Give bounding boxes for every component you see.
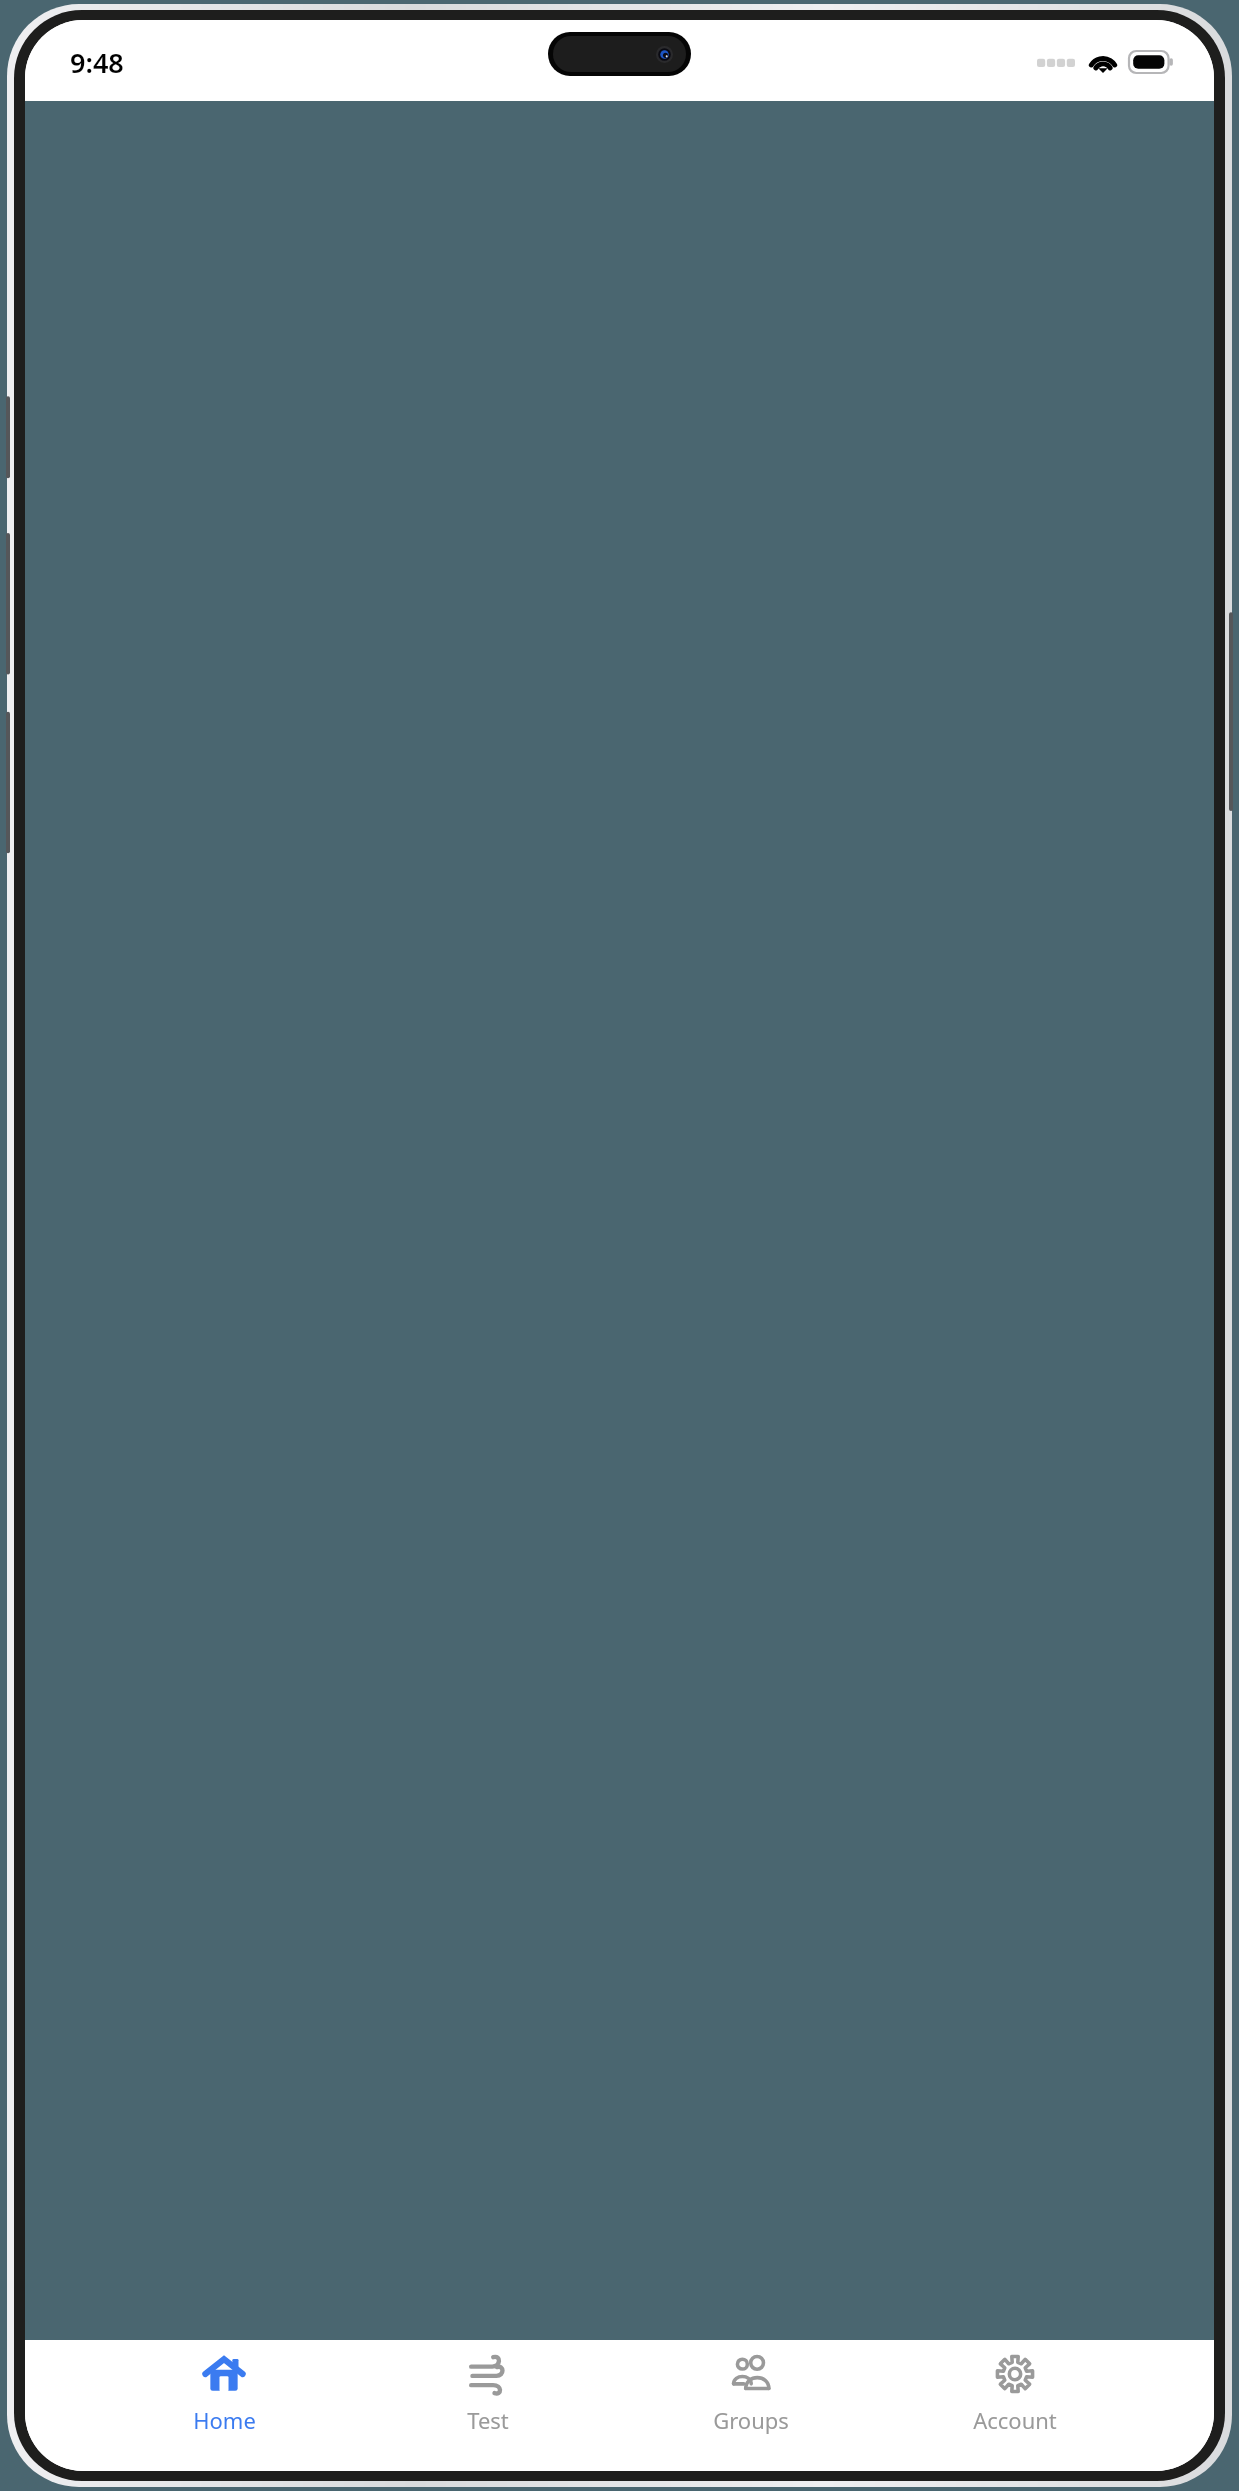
staticText: Groups [713,2405,789,2435]
staticText: Home [193,2405,256,2435]
staticText: 9:48 [70,44,124,81]
staticText: Account [973,2405,1057,2435]
staticText: Test [467,2405,509,2435]
button[interactable]: Home [159,2349,289,2439]
button[interactable]: Groups [686,2349,816,2439]
button[interactable]: Account [950,2349,1080,2439]
button[interactable]: Test [423,2349,553,2439]
